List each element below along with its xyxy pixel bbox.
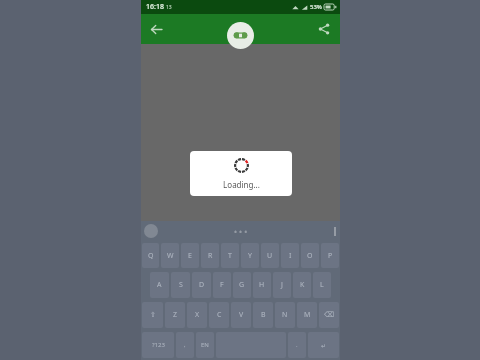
- staticText: ,: [184, 341, 186, 349]
- staticText: K: [300, 280, 305, 290]
- staticText: M: [304, 310, 311, 320]
- staticText: G: [239, 280, 245, 290]
- button[interactable]: ⌫: [319, 302, 339, 328]
- button[interactable]: O: [301, 243, 319, 268]
- button[interactable]: U: [261, 243, 279, 268]
- staticText: Q: [148, 251, 154, 261]
- staticText: 13: [166, 4, 172, 11]
- staticText: • • •: [234, 226, 248, 237]
- button[interactable]: R: [201, 243, 219, 268]
- staticText: R: [208, 251, 213, 261]
- staticText: N: [282, 310, 288, 320]
- staticText: E: [188, 251, 192, 261]
- staticText: 16:18: [146, 2, 164, 12]
- button[interactable]: K: [293, 272, 311, 298]
- button[interactable]: ↵: [308, 332, 339, 358]
- button[interactable]: F: [213, 272, 231, 298]
- button[interactable]: G: [233, 272, 251, 298]
- staticText: S: [179, 280, 183, 290]
- staticText: 53%: [310, 3, 322, 11]
- button[interactable]: D: [192, 272, 211, 298]
- staticText: X: [195, 310, 200, 320]
- staticText: C: [217, 310, 222, 320]
- button[interactable]: A: [150, 272, 169, 298]
- staticText: V: [239, 310, 244, 320]
- button[interactable]: C: [209, 302, 229, 328]
- staticText: D: [199, 280, 205, 290]
- button[interactable]: I: [281, 243, 299, 268]
- staticText: .: [296, 341, 298, 349]
- staticText: J: [281, 280, 283, 290]
- button[interactable]: P: [321, 243, 339, 268]
- button[interactable]: E: [181, 243, 199, 268]
- button[interactable]: Z: [165, 302, 185, 328]
- button[interactable]: Share: [313, 18, 335, 40]
- button[interactable]: X: [187, 302, 207, 328]
- button[interactable]: Q: [142, 243, 159, 268]
- staticText: B: [261, 310, 266, 320]
- button[interactable]: Loading...: [190, 151, 292, 196]
- button[interactable]: H: [253, 272, 271, 298]
- button[interactable]: EN: [196, 332, 214, 358]
- button[interactable]: W: [161, 243, 179, 268]
- button[interactable]: Back: [145, 18, 167, 40]
- staticText: EN: [201, 341, 209, 349]
- button[interactable]: N: [275, 302, 295, 328]
- button[interactable]: ⇧: [142, 302, 163, 328]
- staticText: Y: [248, 251, 252, 261]
- staticText: Z: [173, 310, 178, 320]
- staticText: Loading...: [223, 179, 260, 190]
- button[interactable]: V: [231, 302, 251, 328]
- staticText: H: [259, 280, 265, 290]
- button[interactable]: ?123: [142, 332, 174, 358]
- staticText: W: [167, 251, 174, 261]
- staticText: L: [320, 280, 324, 290]
- staticText: ⌫: [324, 311, 334, 319]
- staticText: ↵: [321, 342, 327, 349]
- staticText: A: [157, 280, 162, 290]
- staticText: ⇧: [150, 311, 156, 319]
- button[interactable]: M: [297, 302, 317, 328]
- staticText: T: [228, 251, 232, 261]
- staticText: U: [267, 251, 273, 261]
- button[interactable]: L: [313, 272, 331, 298]
- staticText: P: [328, 251, 333, 261]
- button[interactable]: B: [253, 302, 273, 328]
- button[interactable]: J: [273, 272, 291, 298]
- staticText: I: [289, 251, 292, 261]
- staticText: O: [307, 251, 313, 261]
- button[interactable]: S: [171, 272, 190, 298]
- button[interactable]: T: [221, 243, 239, 268]
- button[interactable]: Y: [241, 243, 259, 268]
- staticText: F: [220, 280, 224, 290]
- staticText: ?123: [152, 341, 165, 349]
- button[interactable]: Profile avatar: [227, 22, 254, 49]
- button[interactable]: Emoji: [144, 224, 158, 238]
